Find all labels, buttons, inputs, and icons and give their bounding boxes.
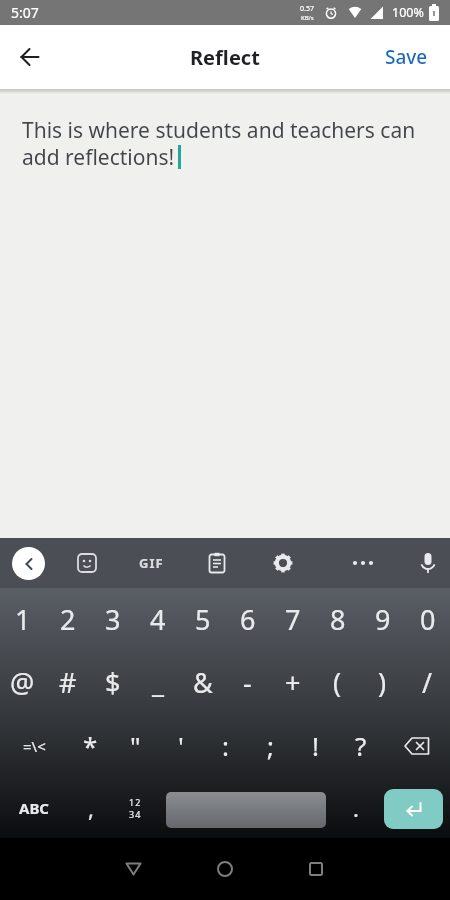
staticText: ABC [19,798,49,818]
staticText: & [193,664,213,701]
staticText: ( [333,664,342,701]
button[interactable]: * [68,714,113,777]
button[interactable]: 7 [270,588,315,651]
button[interactable]: 6 [225,588,270,651]
staticText: + [285,664,301,701]
staticText: Reflect [190,44,260,71]
button[interactable]: 4 [135,588,180,651]
staticText: $ [105,664,121,701]
button[interactable]: $ [90,651,135,714]
button[interactable]: 3 [90,588,135,651]
staticText: 5:07 [11,3,39,22]
staticText: * [83,728,98,763]
button[interactable] [350,550,376,576]
staticText: @ [10,664,35,701]
staticText: 6 [240,601,256,638]
staticText: ? [355,728,367,763]
button[interactable]: Save [385,44,428,70]
button[interactable] [166,792,326,828]
button[interactable] [302,855,330,883]
button[interactable]: / [405,651,450,714]
button[interactable]: ' [158,714,203,777]
staticText: 34 [129,808,142,820]
staticText: 2 [60,601,76,638]
button[interactable]: ( [315,651,360,714]
button[interactable] [383,714,450,777]
button[interactable]: 0 [405,588,450,651]
staticText: . [353,793,359,823]
button[interactable]: 5 [180,588,225,651]
staticText: 100% [392,4,424,21]
button[interactable]: ? [338,714,383,777]
button[interactable]: . [333,777,378,838]
button[interactable]: 12 [113,777,158,838]
button[interactable]: 9 [360,588,405,651]
staticText: 5 [195,601,211,638]
staticText: - [243,664,252,701]
staticText: 9 [375,601,391,638]
staticText: / [422,664,433,701]
staticText: GIF [139,554,164,572]
button[interactable]: ) [360,651,405,714]
staticText: 0.57 [300,4,314,14]
button[interactable]: - [225,651,270,714]
button[interactable]: + [270,651,315,714]
staticText: 3 [105,601,121,638]
button[interactable]: & [180,651,225,714]
button[interactable]: ; [248,714,293,777]
staticText: 12 [129,796,142,808]
button[interactable] [206,552,228,574]
button[interactable]: 2 [45,588,90,651]
staticText: KB/s [301,14,314,22]
button[interactable] [417,552,439,574]
button[interactable] [211,855,239,883]
button[interactable]: 8 [315,588,360,651]
staticText: 7 [285,601,301,638]
staticText: # [59,664,77,701]
button[interactable]: # [45,651,90,714]
staticText: ; [267,728,274,763]
button[interactable] [119,855,147,883]
staticText: , [88,793,94,823]
button[interactable]: GIF [135,554,167,572]
staticText: ' [178,728,184,763]
staticText: This is where students and teachers can … [22,116,416,171]
button[interactable]: : [203,714,248,777]
staticText: =\< [23,736,46,756]
staticText: ! [312,728,319,763]
button[interactable] [16,43,44,71]
button[interactable] [76,552,98,574]
staticText: : [222,728,229,763]
staticText: 1 [15,601,31,638]
button[interactable]: ! [293,714,338,777]
staticText: ) [378,664,387,701]
button[interactable]: " [113,714,158,777]
staticText: _ [152,664,164,701]
button[interactable] [12,547,45,580]
staticText: 4 [150,601,166,638]
button[interactable] [272,552,294,574]
staticText: " [130,728,141,763]
button[interactable]: _ [135,651,180,714]
button[interactable] [384,789,443,829]
button[interactable]: =\< [0,714,68,777]
button[interactable]: , [68,777,113,838]
button[interactable]: ABC [0,777,68,838]
button[interactable]: 1 [0,588,45,651]
staticText: 8 [330,601,346,638]
button[interactable]: @ [0,651,45,714]
staticText: 0 [420,601,436,638]
staticText: Save [385,44,428,70]
